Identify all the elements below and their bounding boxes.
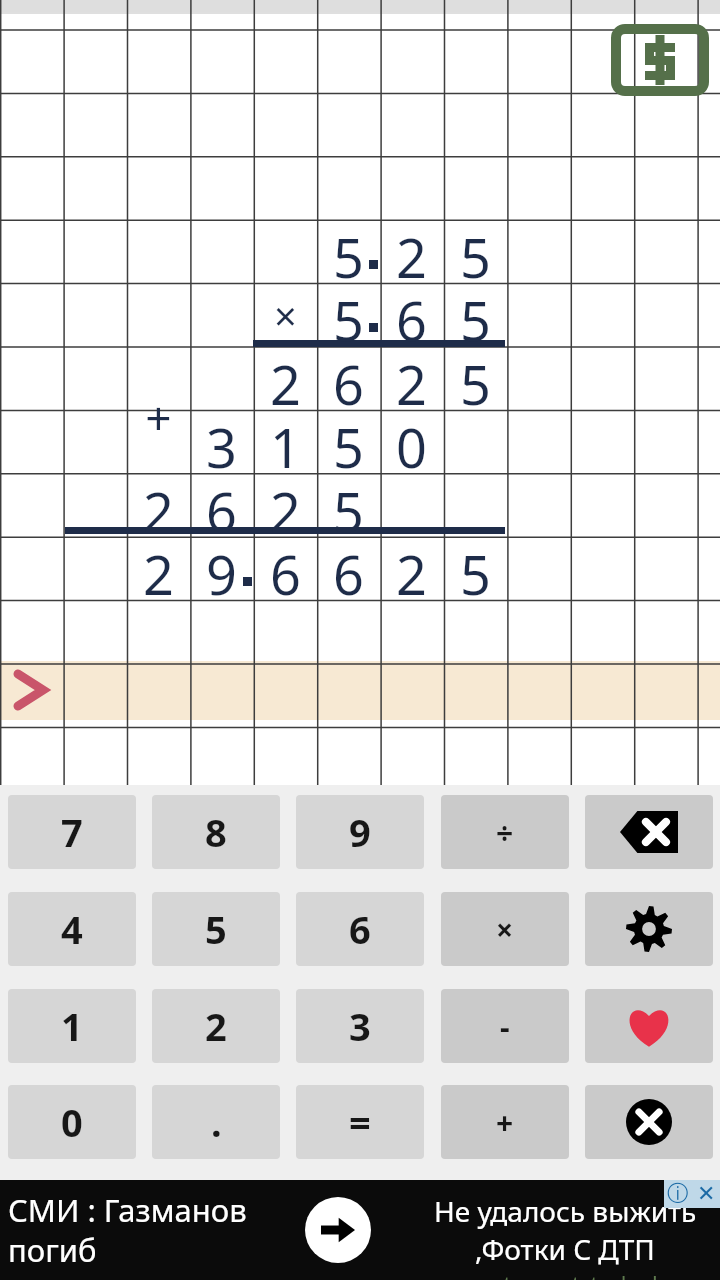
staticText: 2 [205,1000,227,1052]
button[interactable]: Ad info [664,1180,692,1208]
staticText: 6 [270,537,301,600]
staticText: 2 [396,220,427,283]
staticText: 2 [396,347,427,410]
staticText: 5 [333,220,364,283]
button[interactable]: + [441,1085,569,1159]
staticText: ÷ [496,812,514,853]
staticText: + [145,386,172,449]
button[interactable]: Favorite [585,989,713,1063]
staticText: 2 [270,474,301,537]
button[interactable]: 9 [296,795,424,869]
button[interactable]: . [152,1085,280,1159]
button[interactable]: 6 [296,892,424,966]
staticText: 1 [61,1000,83,1052]
button[interactable]: 8 [152,795,280,869]
staticText: 5 [205,903,227,955]
staticText: 6 [333,537,364,600]
staticText: + [496,1102,514,1143]
staticText: 2 [143,537,174,600]
staticText: 5 [460,537,491,600]
staticText: 2 [143,474,174,537]
staticText: - [500,1006,510,1047]
staticText: ✕ [697,1181,716,1207]
staticText: × [274,288,297,342]
button[interactable]: 4 [8,892,136,966]
staticText: × [496,909,514,950]
button[interactable]: ÷ [441,795,569,869]
staticText: 3 [206,410,237,473]
staticText: ,Фотки С ДТП [475,1230,655,1268]
button[interactable]: 1 [8,989,136,1063]
staticText: СМИ : Газманов погиб [8,1189,298,1271]
staticText: 2 [396,537,427,600]
staticText: . [211,1096,222,1148]
staticText: 9 [206,537,237,600]
staticText: 0 [396,410,427,473]
button[interactable]: 5 [152,892,280,966]
staticText: 6 [333,347,364,410]
staticText: ⓘ [667,1180,689,1208]
staticText: 5 [333,474,364,537]
staticText: 5 [460,220,491,283]
staticText: 0 [61,1096,83,1148]
staticText: 6 [349,903,371,955]
staticText: 5 [460,283,491,346]
staticText: 4 [61,903,83,955]
staticText: 6 [206,474,237,537]
button[interactable]: 7 [8,795,136,869]
staticText: 5 [460,347,491,410]
button[interactable]: 0 [8,1085,136,1159]
staticText: 2 [270,347,301,410]
staticText: 1 [270,410,301,473]
staticText: = [349,1096,371,1148]
staticText: 8 [205,806,227,858]
staticText: 5 [333,283,364,346]
staticText: restaurantstork.nl [472,1268,658,1280]
staticText: 7 [61,806,83,858]
button[interactable]: Currency [611,24,709,96]
button[interactable]: - [441,989,569,1063]
button[interactable]: Close ad [692,1180,720,1208]
button[interactable]: СМИ : Газманов погиб [0,1180,720,1280]
staticText: 6 [396,283,427,346]
button[interactable]: × [441,892,569,966]
button[interactable]: Backspace [585,795,713,869]
staticText: 9 [349,806,371,858]
button[interactable]: 2 [152,989,280,1063]
staticText: 3 [349,1000,371,1052]
button[interactable]: Settings [585,892,713,966]
button[interactable]: = [296,1085,424,1159]
button[interactable]: 3 [296,989,424,1063]
staticText: Не удалось выжить [434,1192,697,1230]
staticText: 5 [333,410,364,473]
button[interactable]: Clear [585,1085,713,1159]
